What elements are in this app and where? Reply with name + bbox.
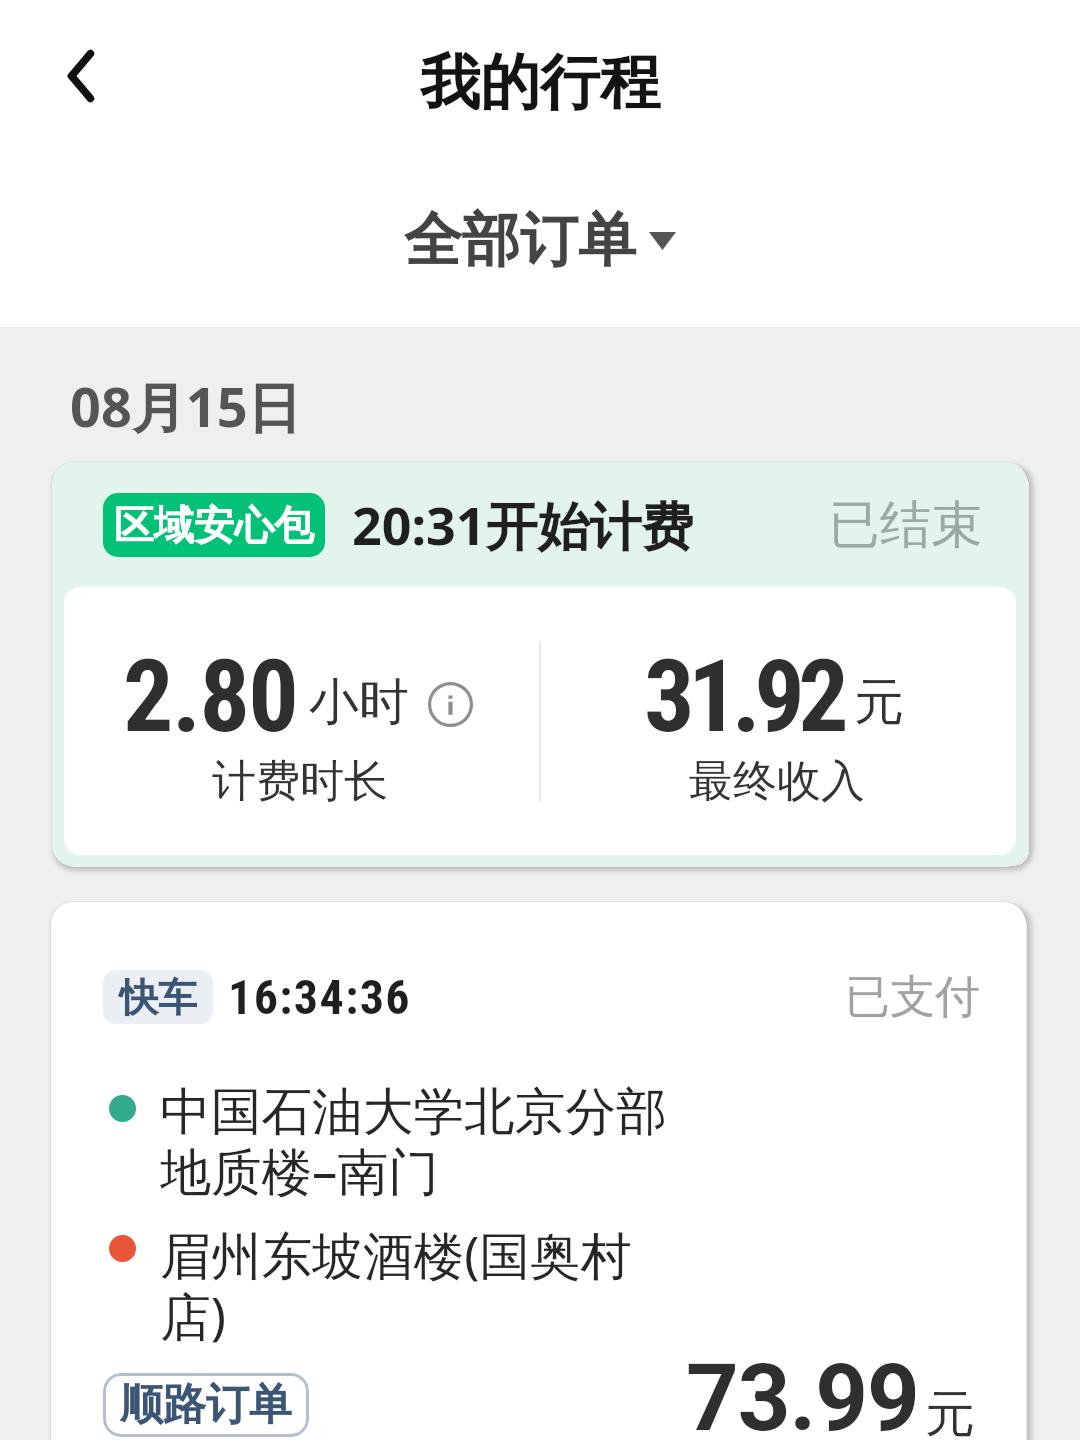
staticText: 08月15日 xyxy=(70,369,302,443)
staticText: 元 xyxy=(854,671,904,734)
button[interactable]: 区域安心包 xyxy=(52,462,1028,867)
staticText: 中国石油大学北京分部地质楼–南门 xyxy=(160,1080,670,1205)
staticText: 已支付 xyxy=(845,969,980,1025)
staticText: 元 xyxy=(925,1383,975,1440)
staticText: 16:34:36 xyxy=(228,969,411,1025)
staticText: 快车 xyxy=(119,973,197,1022)
button[interactable]: 计费说明 xyxy=(428,682,473,727)
staticText: 我的行程 xyxy=(420,45,660,121)
button[interactable]: 快车 xyxy=(51,902,1026,1440)
button[interactable]: 返回 xyxy=(40,30,120,110)
staticText: 最终收入 xyxy=(689,754,865,809)
button[interactable]: 全部订单 xyxy=(404,204,676,277)
staticText: 眉州东坡酒楼(国奥村店) xyxy=(160,1220,670,1350)
staticText: 区域安心包 xyxy=(114,500,314,550)
staticText: 计费时长 xyxy=(212,754,388,809)
staticText: 73.99 xyxy=(686,1345,919,1440)
staticText: 20:31开始计费 xyxy=(352,489,694,560)
staticText: 顺路订单 xyxy=(120,1378,292,1432)
button[interactable]: 顺路订单 xyxy=(103,1373,309,1437)
staticText: 全部订单 xyxy=(404,204,636,277)
staticText: 2.80 xyxy=(123,638,298,755)
staticText: 小时 xyxy=(309,671,409,734)
staticText: 31.92 xyxy=(644,638,843,755)
staticText: 已结束 xyxy=(829,493,982,557)
